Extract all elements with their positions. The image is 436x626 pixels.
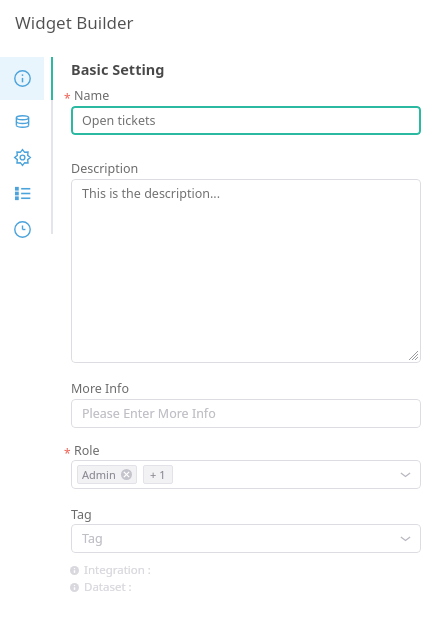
button[interactable]: Remove Admin [121, 469, 132, 480]
staticText: Tag [71, 506, 92, 523]
staticText: Widget Builder [15, 11, 134, 34]
staticText: More Info [71, 380, 129, 397]
button[interactable]: Open tickets [71, 106, 421, 135]
staticText: Please Enter More Info [82, 405, 216, 422]
button[interactable]: + 1 [150, 465, 166, 484]
staticText: * [64, 445, 71, 461]
button[interactable]: Admin [71, 460, 421, 489]
staticText: * [64, 90, 71, 106]
button[interactable]: Admin [82, 465, 132, 484]
button[interactable]: Please Enter More Info [71, 399, 421, 428]
staticText: Dataset : [84, 579, 132, 595]
staticText: Name [74, 87, 110, 104]
staticText: Tag [82, 530, 103, 547]
staticText: Open tickets [82, 112, 156, 129]
staticText: Basic Setting [71, 59, 165, 79]
button[interactable]: Tag [71, 524, 421, 553]
staticText: Integration : [84, 562, 151, 578]
button[interactable]: Data source [0, 103, 44, 139]
staticText: Description [71, 160, 139, 177]
staticText: + 1 [150, 467, 166, 482]
staticText: Admin [82, 467, 116, 482]
button[interactable]: Settings [0, 139, 44, 175]
button[interactable]: Basic info [0, 57, 44, 100]
button[interactable]: List [0, 175, 44, 211]
staticText: This is the description... [82, 185, 221, 202]
button[interactable]: This is the description... [71, 179, 421, 363]
button[interactable]: History [0, 211, 44, 247]
staticText: Role [74, 442, 100, 459]
